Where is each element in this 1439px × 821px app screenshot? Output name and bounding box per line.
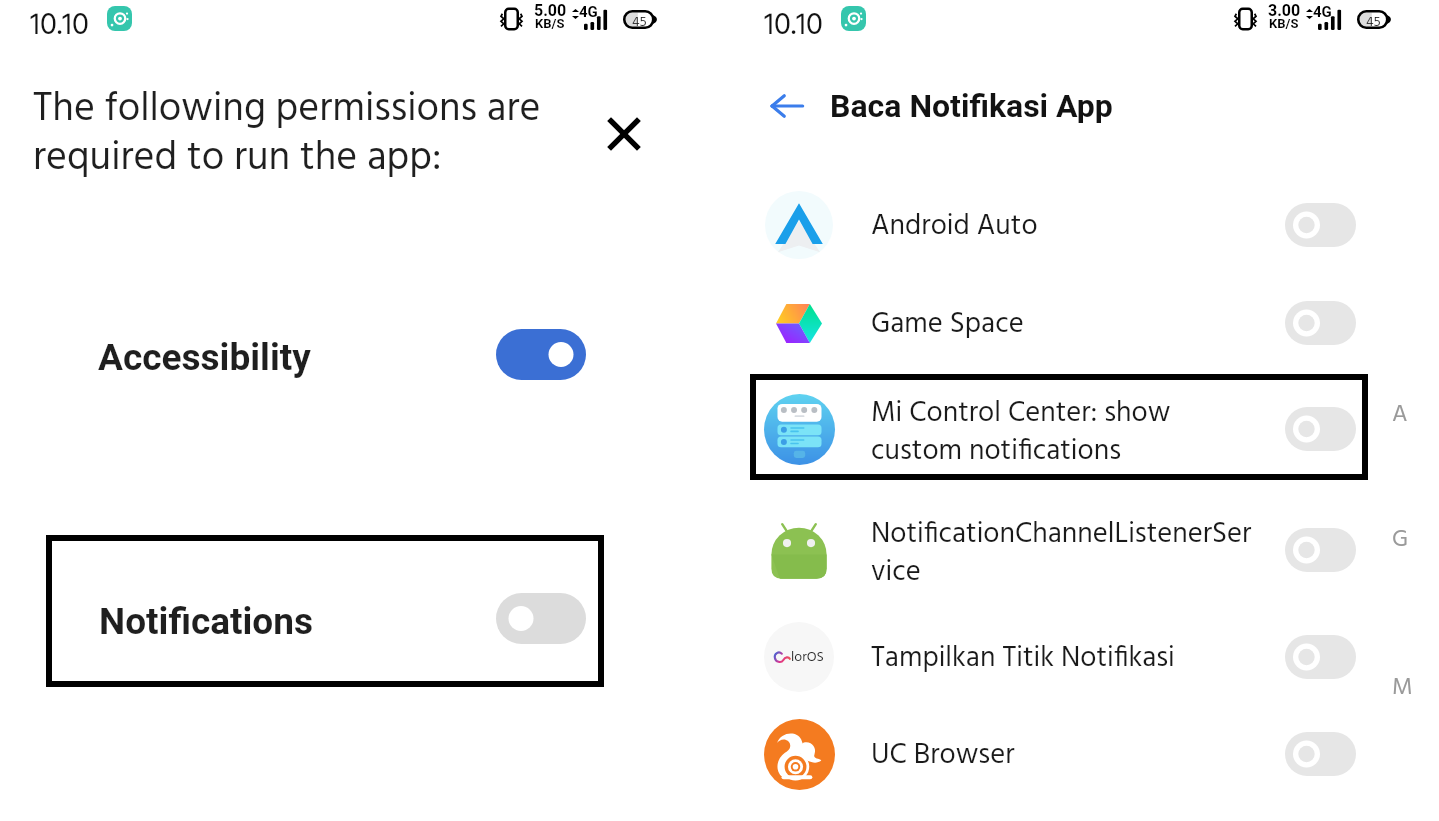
- button[interactable]: Close: [596, 106, 652, 162]
- button[interactable]: [1285, 732, 1356, 776]
- staticText: Tampilkan Titik Notifikasi: [871, 636, 1175, 682]
- button[interactable]: lorOS: [720, 617, 1439, 697]
- staticText: Notifications: [99, 600, 314, 643]
- staticText: NotificationChannelListenerSer vice: [871, 512, 1252, 592]
- staticText: The following permissions are required t…: [33, 78, 541, 191]
- button[interactable]: [1285, 528, 1356, 572]
- staticText: 3.00: [1268, 1, 1301, 20]
- button[interactable]: [1285, 407, 1356, 451]
- button[interactable]: [1285, 635, 1356, 679]
- staticText: Baca Notifikasi App: [830, 87, 1113, 125]
- staticText: KB/S: [535, 16, 565, 31]
- button[interactable]: UC Browser: [720, 714, 1439, 794]
- button[interactable]: Game Space: [720, 283, 1439, 363]
- button[interactable]: [1285, 203, 1356, 247]
- staticText: A: [1392, 396, 1408, 434]
- staticText: 45: [1366, 11, 1381, 28]
- staticText: 5.00: [534, 1, 567, 20]
- button[interactable]: Accessibility: [60, 322, 620, 392]
- button[interactable]: Mi Control Center: show custom notificat…: [720, 389, 1439, 469]
- staticText: Game Space: [871, 302, 1024, 348]
- staticText: Mi Control Center: show custom notificat…: [871, 391, 1171, 471]
- staticText: 10.10: [30, 1, 89, 45]
- staticText: lorOS: [791, 646, 824, 668]
- staticText: KB/S: [1269, 16, 1299, 31]
- staticText: 4G: [579, 3, 598, 21]
- button[interactable]: Back: [761, 80, 813, 132]
- button[interactable]: [496, 329, 586, 380]
- staticText: M: [1392, 669, 1413, 707]
- button[interactable]: NotificationChannelListenerSer vice: [720, 510, 1439, 590]
- staticText: G: [1392, 521, 1409, 559]
- staticText: Android Auto: [871, 204, 1038, 250]
- staticText: 45: [632, 11, 647, 28]
- button[interactable]: [1285, 301, 1356, 345]
- button[interactable]: Notifications: [52, 551, 598, 691]
- staticText: UC Browser: [871, 733, 1015, 779]
- staticText: Accessibility: [98, 336, 311, 379]
- staticText: 4G: [1313, 3, 1332, 21]
- button[interactable]: [496, 593, 586, 644]
- button[interactable]: Android Auto: [720, 185, 1439, 265]
- staticText: 10.10: [764, 1, 823, 45]
